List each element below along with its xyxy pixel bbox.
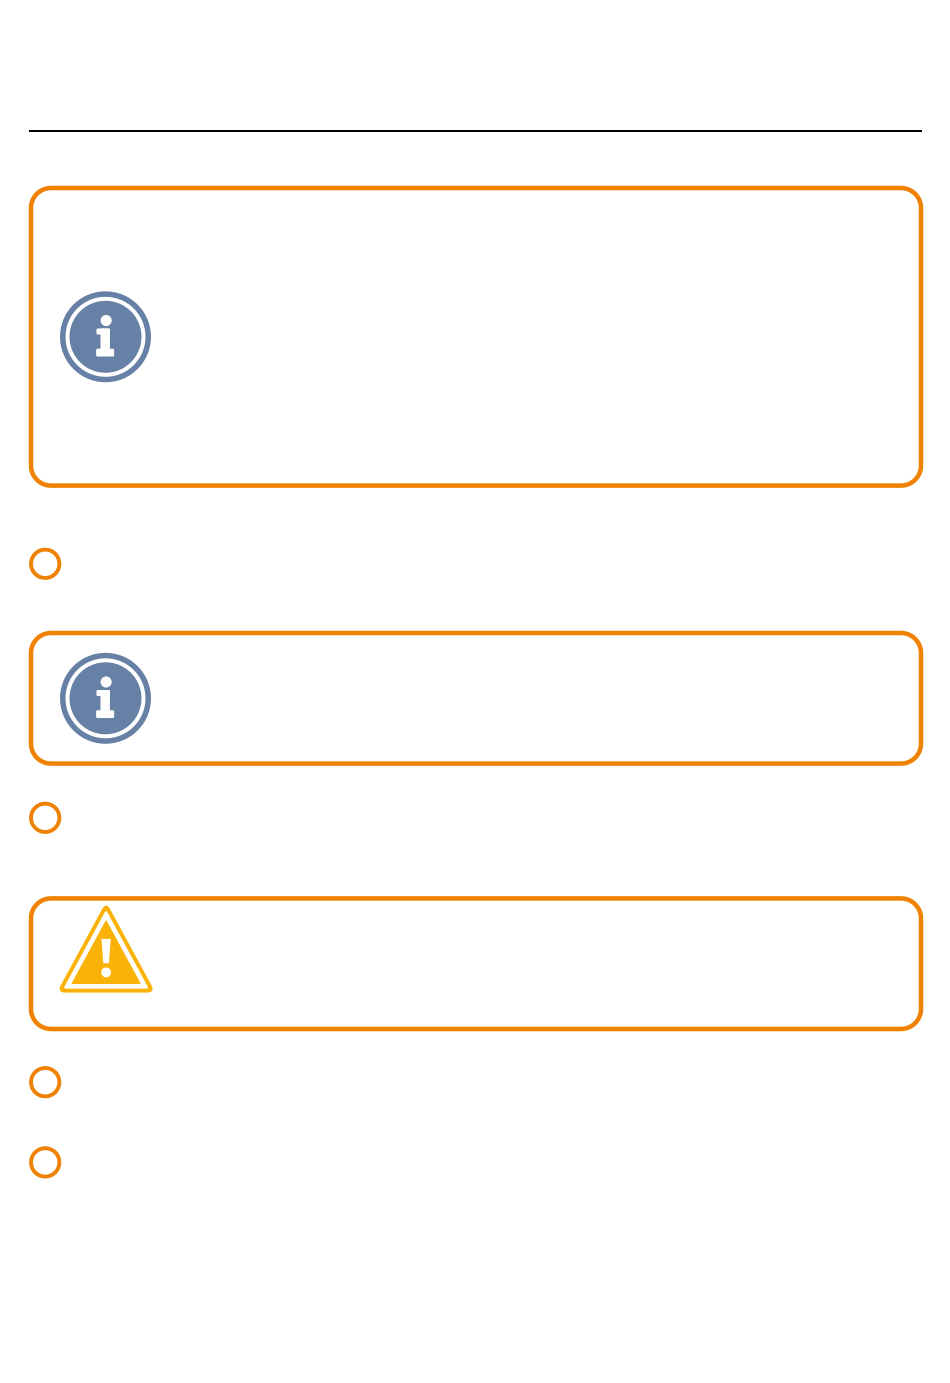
- button[interactable]: Select option: [31, 804, 59, 832]
- button[interactable]: Information: [31, 633, 921, 764]
- button[interactable]: Select option: [31, 550, 59, 578]
- button[interactable]: Information: [31, 188, 921, 486]
- button[interactable]: Warning: [31, 898, 921, 1029]
- button[interactable]: Select option: [31, 1148, 59, 1177]
- button[interactable]: Select option: [31, 1068, 59, 1096]
